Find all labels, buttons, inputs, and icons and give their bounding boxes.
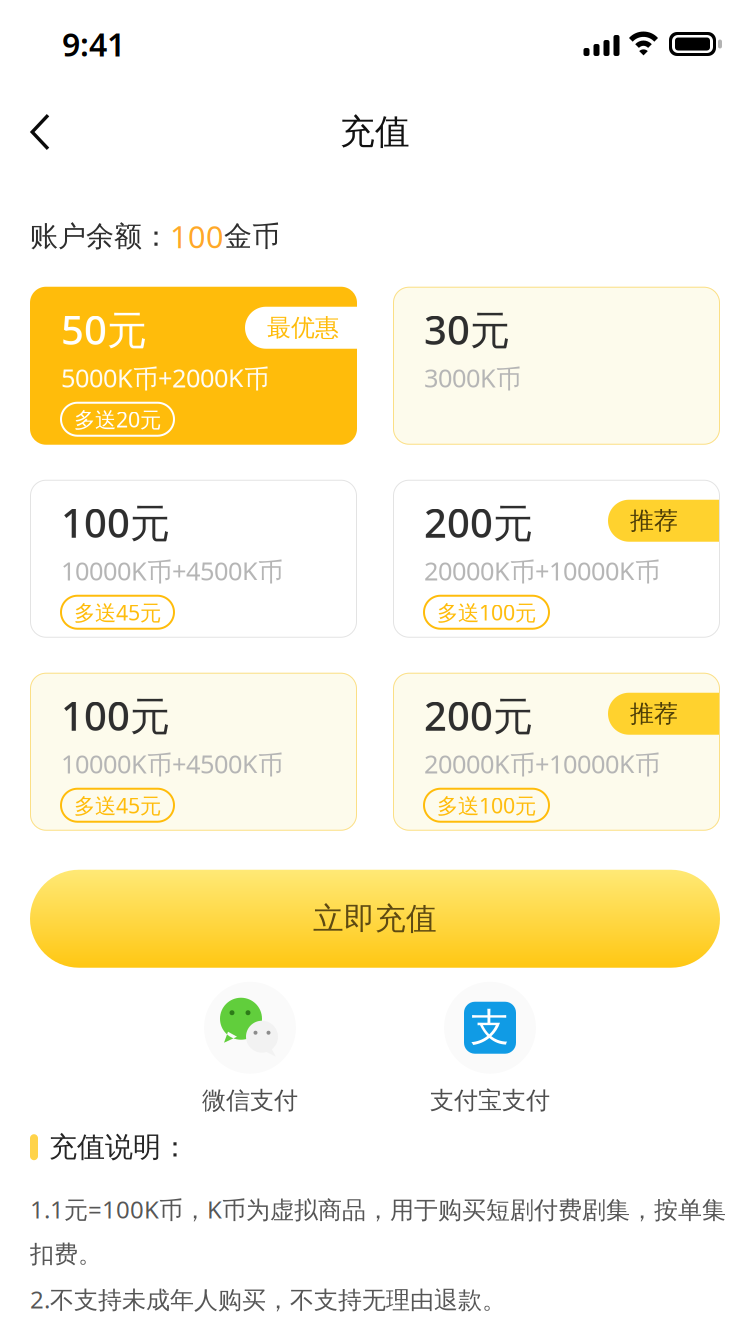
staticText: 立即充值 [313, 900, 437, 938]
staticText: 支付宝支付 [430, 1086, 550, 1115]
button[interactable]: 200元 [393, 480, 720, 638]
staticText: 50元 [61, 303, 147, 356]
staticText: 多送20元 [74, 405, 161, 433]
staticText: 微信支付 [202, 1086, 298, 1115]
button[interactable]: 微信支付 [202, 982, 298, 1115]
staticText: 100元 [61, 689, 170, 742]
staticText: 100 [170, 216, 224, 257]
staticText: 扣费。 [30, 1239, 102, 1269]
staticText: 9:41 [62, 23, 125, 65]
staticText: 3000K币 [424, 361, 521, 395]
staticText: 多送100元 [437, 598, 536, 626]
staticText: 200元 [424, 689, 533, 742]
button[interactable]: 200元 [393, 673, 720, 831]
staticText: 1.1元=100K币，K币为虚拟商品，用于购买短剧付费剧集，按单集 [30, 1193, 726, 1225]
staticText: 100元 [61, 496, 170, 549]
staticText: 30元 [424, 303, 510, 356]
button[interactable]: 返回 [0, 88, 80, 176]
staticText: 20000K币+10000K币 [424, 747, 660, 781]
button[interactable]: 100元 [30, 480, 357, 638]
staticText: 10000K币+4500K币 [61, 554, 283, 588]
staticText: 多送100元 [437, 791, 536, 819]
button[interactable]: 100元 [30, 673, 357, 831]
button[interactable]: 立即充值 [30, 870, 720, 968]
staticText: 推荐 [630, 506, 678, 535]
button[interactable]: 30元 [393, 287, 720, 445]
staticText: 5000K币+2000K币 [61, 361, 269, 395]
staticText: 20000K币+10000K币 [424, 554, 660, 588]
staticText: 10000K币+4500K币 [61, 747, 283, 781]
staticText: 2.不支持未成年人购买，不支持无理由退款。 [30, 1283, 506, 1315]
staticText: 支 [470, 1004, 509, 1051]
staticText: 多送45元 [74, 598, 161, 626]
staticText: 充值说明： [49, 1130, 189, 1164]
staticText: 金币 [224, 219, 280, 254]
staticText: 充值 [340, 111, 410, 153]
staticText: 最优惠 [267, 313, 339, 342]
button[interactable]: 50元 [30, 287, 357, 445]
staticText: 多送45元 [74, 791, 161, 819]
button[interactable]: 支 [430, 982, 550, 1115]
staticText: 推荐 [630, 699, 678, 728]
staticText: 200元 [424, 496, 533, 549]
staticText: 账户余额： [30, 219, 170, 254]
